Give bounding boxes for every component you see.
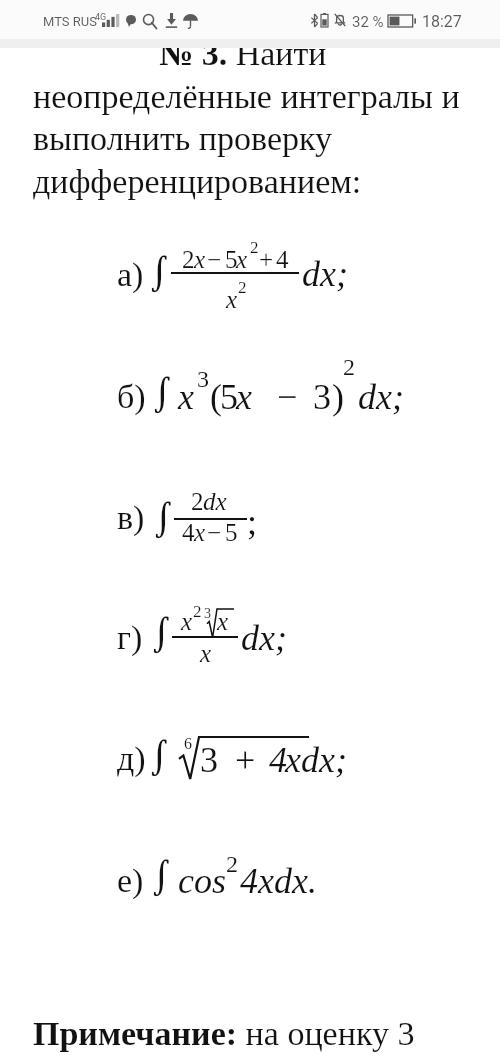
staticText: выполнить проверку bbox=[33, 120, 333, 158]
staticText: ( bbox=[210, 377, 222, 417]
staticText: 2 bbox=[238, 278, 247, 297]
staticText: 2 bbox=[182, 246, 195, 274]
staticText: x bbox=[226, 286, 238, 314]
staticText: 2 bbox=[191, 488, 204, 516]
staticText: ) bbox=[332, 377, 344, 417]
staticText: ∫ bbox=[151, 860, 171, 893]
staticText: 4 bbox=[182, 519, 195, 547]
staticText: 3 bbox=[200, 740, 218, 780]
staticText: 18:27 bbox=[422, 12, 462, 31]
staticText: x bbox=[236, 246, 248, 274]
other: Weather bbox=[183, 14, 198, 28]
staticText: ∫ bbox=[149, 256, 169, 289]
staticText: ; bbox=[247, 502, 258, 542]
staticText: MTS RUS bbox=[43, 14, 97, 29]
staticText: xdx; bbox=[285, 740, 347, 780]
staticText: 3 bbox=[204, 606, 211, 622]
staticText: дифференцированием: bbox=[33, 163, 362, 201]
other: Messages bbox=[126, 15, 136, 27]
staticText: dx bbox=[203, 488, 227, 516]
staticText: ∫ bbox=[151, 617, 171, 650]
staticText: в) bbox=[117, 499, 145, 537]
staticText: dx; bbox=[302, 254, 348, 294]
staticText: 3 bbox=[313, 377, 331, 417]
staticText: ∫ bbox=[153, 502, 173, 535]
staticText: dx; bbox=[358, 377, 404, 417]
staticText: 2 bbox=[250, 238, 259, 257]
staticText: д) bbox=[117, 740, 146, 778]
staticText: 32 % bbox=[352, 13, 384, 31]
staticText: ∫ bbox=[152, 377, 172, 410]
staticText: x bbox=[194, 519, 206, 547]
staticText: а) bbox=[117, 256, 144, 294]
staticText: г) bbox=[117, 619, 143, 657]
staticText: x bbox=[200, 640, 212, 668]
staticText: ∫ bbox=[149, 740, 169, 773]
staticText: + bbox=[259, 246, 274, 274]
staticText: 2 bbox=[343, 354, 355, 381]
staticText: 4 bbox=[269, 740, 287, 780]
other: Downloads bbox=[165, 13, 178, 28]
staticText: е) bbox=[117, 862, 144, 900]
staticText: № 3. Найти bbox=[159, 35, 327, 73]
staticText: 2 bbox=[193, 602, 202, 621]
staticText: x bbox=[181, 608, 193, 636]
staticText: 4G bbox=[95, 12, 107, 23]
staticText: Примечание: на оценку 3 bbox=[33, 1015, 415, 1053]
staticText: x bbox=[178, 377, 194, 417]
staticText: неопределённые интегралы и bbox=[33, 78, 460, 116]
other: Search bbox=[143, 14, 157, 29]
staticText: − bbox=[207, 519, 222, 547]
staticText: 4xdx. bbox=[240, 861, 317, 901]
staticText: − bbox=[207, 246, 222, 274]
staticText: dx; bbox=[241, 618, 287, 658]
staticText: 4 bbox=[276, 246, 289, 274]
staticText: 3 bbox=[197, 366, 209, 393]
staticText: б) bbox=[117, 378, 146, 416]
staticText: 5 bbox=[225, 246, 238, 274]
staticText: + bbox=[235, 740, 256, 780]
staticText: x bbox=[217, 608, 229, 636]
staticText: 2 bbox=[226, 851, 238, 878]
staticText: − bbox=[277, 377, 298, 417]
staticText: 6 bbox=[184, 735, 192, 753]
staticText: x bbox=[236, 377, 252, 417]
staticText: cos bbox=[178, 861, 226, 901]
staticText: x bbox=[194, 246, 206, 274]
staticText: 5 bbox=[220, 377, 238, 417]
staticText: 5 bbox=[225, 519, 238, 547]
